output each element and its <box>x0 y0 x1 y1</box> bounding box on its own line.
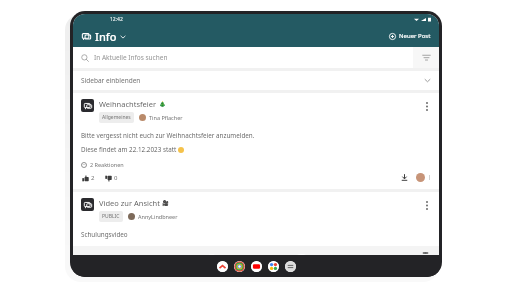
button[interactable]: Mehr Optionen <box>423 99 431 114</box>
button[interactable]: Mehr Optionen <box>423 198 431 213</box>
staticText: 12:42 <box>110 16 123 23</box>
button[interactable]: App <box>285 261 296 272</box>
button[interactable]: Sidebar einblenden <box>73 71 439 90</box>
button[interactable]: Neuer Post <box>387 30 433 42</box>
button[interactable]: 2 <box>81 173 96 183</box>
staticText: | <box>428 174 431 181</box>
staticText: 2 <box>91 174 95 182</box>
button[interactable]: Allgemeines <box>99 112 134 123</box>
staticText: Diese findet am 22.12.2023 statt <box>81 145 178 154</box>
staticText: Weihnachtsfeier <box>99 99 157 109</box>
staticText: Schulungsvideo <box>81 230 128 239</box>
button[interactable]: In Aktuelle Infos suchen <box>73 47 413 68</box>
staticText: Info <box>95 29 117 44</box>
staticText: Bitte vergesst nicht euch zur Weihnachts… <box>81 131 255 140</box>
button[interactable]: Filter <box>413 47 439 68</box>
staticText: 0 <box>114 174 118 182</box>
staticText: 2 Reaktionen <box>90 161 124 168</box>
button[interactable]: PUBLIC <box>99 211 123 222</box>
staticText: Neuer Post <box>399 32 431 40</box>
staticText: AnnyLindbneer <box>138 213 178 220</box>
button[interactable]: App <box>234 261 245 272</box>
button[interactable]: App <box>251 261 262 272</box>
button[interactable]: App <box>217 261 228 272</box>
staticText: Video zur Ansicht <box>99 198 160 208</box>
button[interactable]: 0 <box>104 173 119 183</box>
button[interactable]: Weihnachtsfeier <box>73 93 439 189</box>
staticText: Allgemeines <box>102 114 131 121</box>
button[interactable]: Download <box>399 172 410 183</box>
staticText: Sidebar einblenden <box>81 76 141 85</box>
staticText: PUBLIC <box>102 213 120 220</box>
button[interactable]: Info <box>80 27 128 46</box>
staticText: 🎥 <box>162 200 169 206</box>
staticText: Tina Pflacher <box>149 114 183 121</box>
staticText: 🎄 <box>159 101 166 107</box>
button[interactable]: App <box>268 261 279 272</box>
staticText: In Aktuelle Infos suchen <box>94 53 168 62</box>
button[interactable]: Autor <box>416 173 425 182</box>
button[interactable]: Video zur Ansicht <box>73 192 439 255</box>
button[interactable]: Anhänge <box>73 246 439 255</box>
